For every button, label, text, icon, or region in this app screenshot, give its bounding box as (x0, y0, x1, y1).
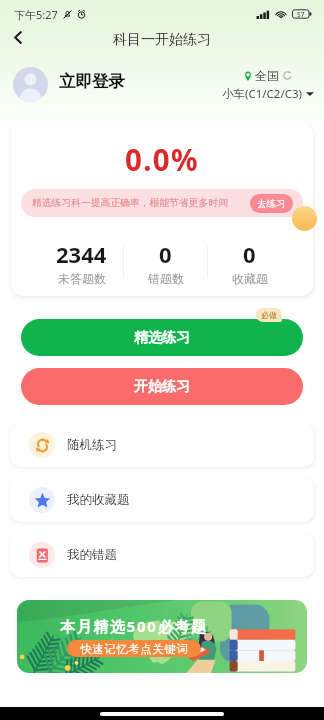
button[interactable]: Coin reward (292, 206, 317, 231)
staticText: 我的收藏题 (67, 492, 130, 508)
staticText: 小车(C1/C2/C3) (222, 86, 302, 102)
staticText: 0 (243, 239, 256, 269)
staticText: 精选练习 (134, 329, 190, 347)
staticText: 2344 (56, 239, 107, 269)
button[interactable]: 随机练习 (10, 423, 314, 467)
staticText: 57 (297, 10, 305, 19)
staticText: 开始练习 (134, 378, 190, 396)
staticText: 我的错题 (67, 547, 117, 563)
staticText: 0 (159, 239, 172, 269)
button[interactable]: 去练习 (250, 194, 293, 213)
staticText: 未答题数 (58, 271, 106, 286)
staticText: 精选练习科一提高正确率，根能节省更多时间 (32, 197, 228, 209)
staticText: 0.0% (11, 139, 313, 179)
button[interactable]: 我的错题 (10, 533, 314, 577)
staticText: 立即登录 (59, 71, 125, 92)
staticText: 全国 (255, 68, 279, 83)
button[interactable]: 开始练习 (21, 368, 303, 405)
staticText: 错题数 (148, 271, 184, 286)
staticText: 收藏题 (232, 271, 268, 286)
button[interactable]: 本月精选500必考题 (17, 600, 307, 673)
button[interactable]: 精选练习科一提高正确率，根能节省更多时间 (21, 189, 303, 217)
staticText: 必做 (261, 310, 277, 320)
button[interactable]: Back (0, 19, 36, 55)
staticText: 去练习 (257, 198, 286, 210)
staticText: 快速记忆考点关键词 (80, 642, 188, 656)
staticText: 随机练习 (67, 437, 117, 453)
staticText: 本月精选500必考题 (60, 616, 208, 636)
button[interactable]: 我的收藏题 (10, 478, 314, 522)
staticText: 下午5:27 (14, 7, 58, 22)
staticText: 科目一开始练习 (113, 31, 211, 49)
button[interactable]: 精选练习 (21, 319, 303, 356)
button[interactable]: 必做 (256, 308, 282, 322)
